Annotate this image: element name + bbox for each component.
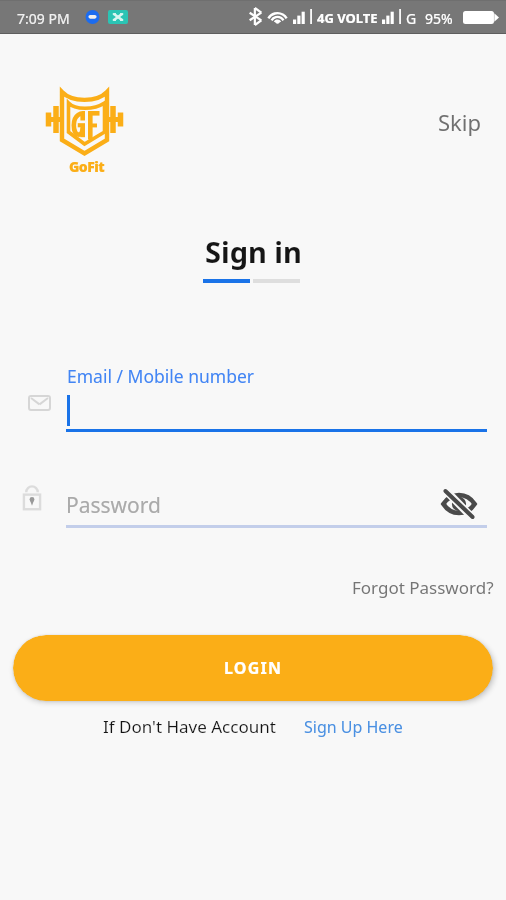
button[interactable]: Sign Up Here: [304, 716, 403, 738]
staticText: Password: [66, 491, 161, 520]
staticText: Forgot Password?: [352, 576, 494, 599]
staticText: 95%: [425, 9, 453, 28]
staticText: Email / Mobile number: [67, 364, 255, 388]
button[interactable]: Password field: [12, 482, 432, 528]
button[interactable]: Show password: [440, 487, 480, 521]
button[interactable]: Forgot Password?: [340, 570, 506, 605]
button[interactable]: Skip: [424, 99, 496, 145]
button[interactable]: LOGIN: [13, 635, 493, 701]
staticText: GoFit: [69, 157, 105, 176]
button[interactable]: Email or mobile number field: [12, 358, 494, 434]
staticText: Skip: [438, 107, 482, 137]
staticText: Sign in: [205, 232, 302, 271]
staticText: If Don't Have Account: [103, 715, 276, 738]
staticText: 7:09 PM: [17, 9, 70, 28]
staticText: G: [406, 9, 417, 28]
staticText: 4G VOLTE: [317, 9, 378, 27]
staticText: LOGIN: [224, 657, 283, 679]
